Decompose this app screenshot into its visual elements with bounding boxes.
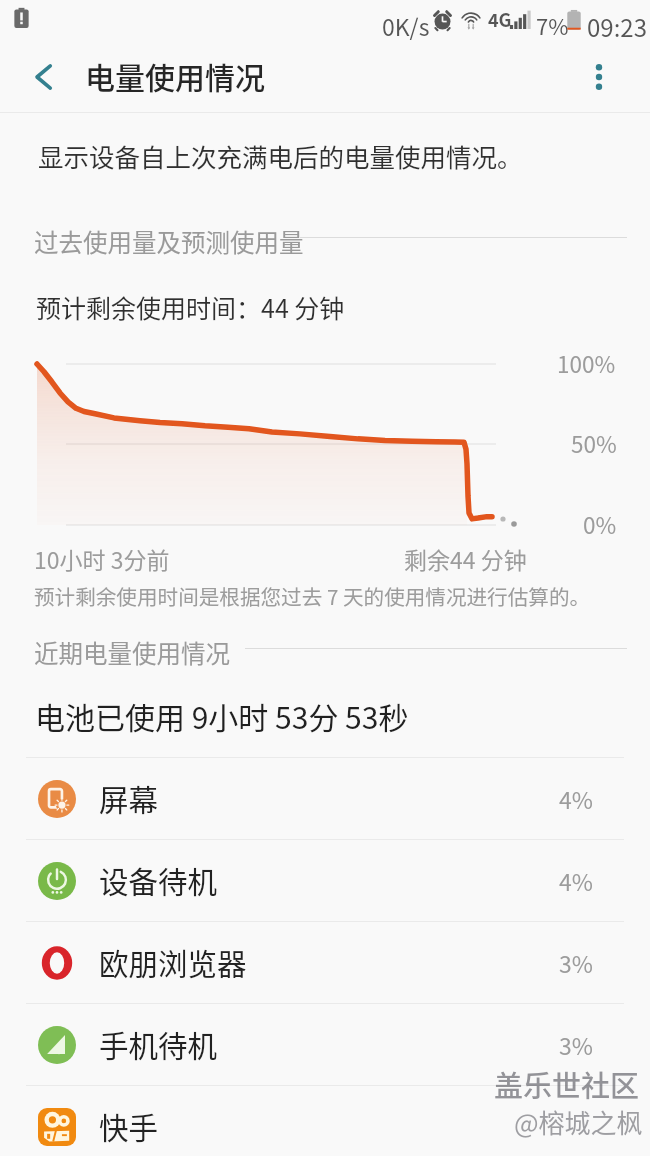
staticText: 3%	[559, 1028, 593, 1061]
staticText: 预计剩余使用时间是根据您过去 7 天的使用情况进行估算的。	[34, 581, 591, 611]
staticText: 欧朋浏览器	[99, 941, 247, 984]
staticText: 近期电量使用情况	[34, 635, 230, 670]
staticText: 0K/s	[382, 9, 430, 42]
staticText: 50%	[571, 427, 617, 460]
button[interactable]: 欧朋浏览器	[0, 922, 650, 1004]
staticText: 4%	[559, 782, 593, 815]
staticText: 4G	[488, 6, 512, 32]
staticText: 0%	[583, 508, 617, 541]
button[interactable]: 快手	[0, 1086, 650, 1156]
staticText: 电量使用情况	[85, 54, 265, 97]
button[interactable]: More options	[572, 50, 626, 104]
staticText: 10小时 3分前	[34, 542, 170, 575]
staticText: 过去使用量及预测使用量	[34, 224, 304, 259]
staticText: 4%	[559, 864, 593, 897]
staticText: 手机待机	[99, 1023, 218, 1066]
staticText: 7%	[536, 9, 569, 41]
staticText: 设备待机	[99, 859, 218, 902]
button[interactable]: Back	[16, 50, 70, 104]
staticText: 屏幕	[99, 777, 159, 820]
staticText: 100%	[557, 347, 616, 380]
button[interactable]: 设备待机	[0, 840, 650, 922]
staticText: 预计剩余使用时间：44 分钟	[36, 289, 345, 325]
staticText: 3%	[559, 946, 593, 979]
button[interactable]: 屏幕	[0, 758, 650, 840]
staticText: @榕城之枫	[514, 1103, 643, 1141]
staticText: 电池已使用 9小时 53分 53秒	[35, 694, 409, 737]
staticText: 09:23	[587, 9, 647, 44]
staticText: 盖乐世社区	[494, 1063, 640, 1105]
staticText: 快手	[99, 1105, 159, 1148]
button[interactable]: 手机待机	[0, 1004, 650, 1086]
staticText: 剩余44 分钟	[404, 542, 527, 575]
staticText: 显示设备自上次充满电后的电量使用情况。	[38, 137, 523, 174]
